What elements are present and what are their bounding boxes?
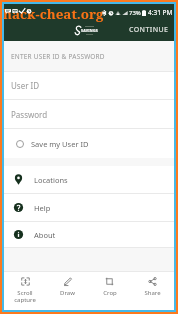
button[interactable]: Share [131,272,174,310]
staticText: Share [144,289,161,297]
staticText: SAVINGS [81,28,98,33]
staticText: CONTINUE [129,25,169,35]
staticText: User ID [11,80,40,91]
button[interactable]: Scroll capture [4,272,46,310]
staticText: Help [34,203,51,213]
staticText: Save my User ID [31,139,89,149]
staticText: Draw [60,289,75,297]
staticText: Scroll capture [14,289,36,304]
staticText: 73% [129,9,141,17]
staticText: Password [11,109,48,120]
button[interactable]: About [4,222,174,247]
button[interactable]: Save my User ID [4,129,174,158]
button[interactable]: Help [4,194,174,221]
staticText: Crop [103,289,117,297]
button[interactable]: User ID [4,72,174,99]
button[interactable]: Crop [88,272,131,310]
button[interactable]: Locations [4,166,174,193]
button[interactable]: Password [4,100,174,128]
staticText: About [34,230,56,240]
staticText: Locations [34,175,68,185]
button[interactable]: Draw [46,272,88,310]
staticText: ENTER USER ID & PASSWORD [11,52,105,61]
staticText: hack-cheat.org [3,5,104,23]
button[interactable]: CONTINUE [124,18,174,41]
staticText: 4:31 PM [148,8,173,17]
